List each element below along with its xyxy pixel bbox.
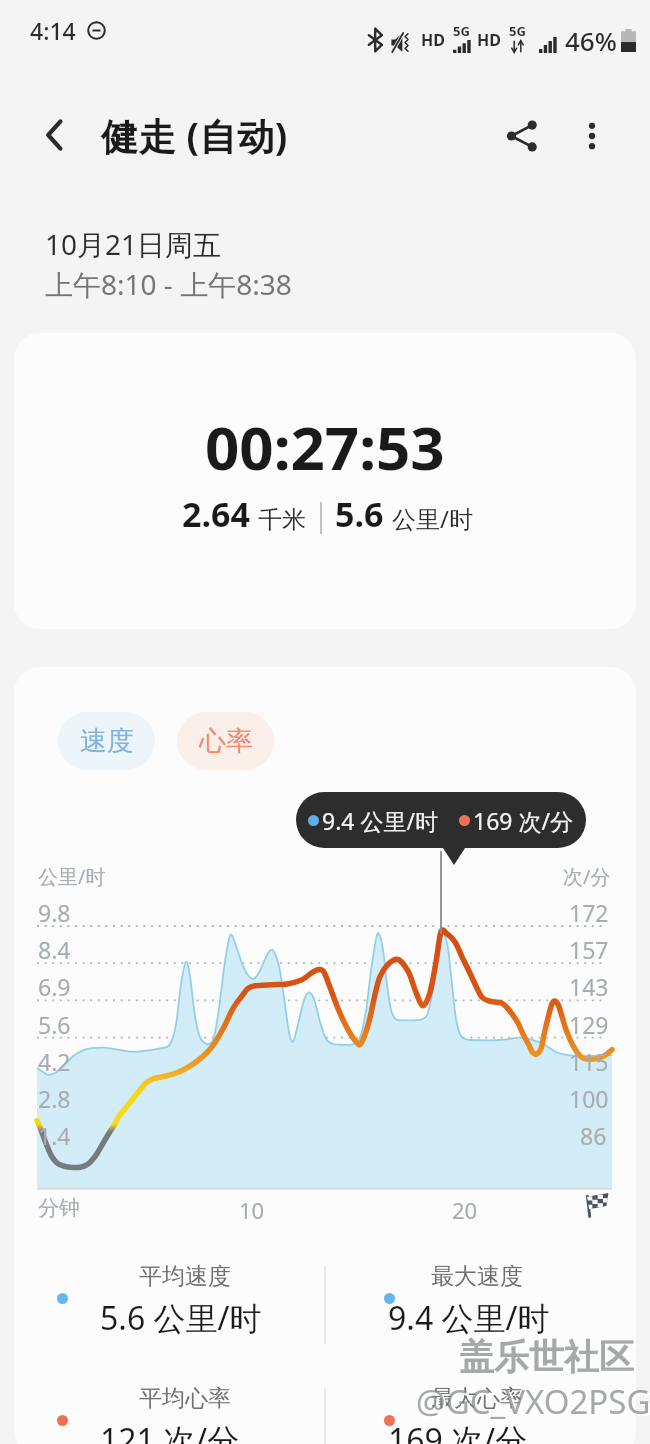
staticText: 速度 xyxy=(80,724,134,758)
staticText: 公里/时 xyxy=(392,502,473,535)
staticText: 5G xyxy=(509,22,526,40)
staticText: 5G xyxy=(453,22,470,40)
staticText: 172 xyxy=(569,897,609,928)
staticText: 盖乐世社区 xyxy=(459,1335,634,1379)
staticText: 86 xyxy=(580,1120,607,1151)
staticText: @GC_VXO2PSG xyxy=(416,1379,650,1424)
button[interactable]: 9.4 公里/时 xyxy=(296,792,586,848)
button[interactable]: Back xyxy=(26,106,84,164)
staticText: 129 xyxy=(569,1009,609,1040)
staticText: 20 xyxy=(452,1195,478,1225)
staticText: 5.6 xyxy=(38,1009,71,1040)
staticText: 上午8:10 - 上午8:38 xyxy=(45,265,292,303)
staticText: 115 xyxy=(569,1046,609,1077)
staticText: 健走 (自动) xyxy=(101,110,288,161)
staticText: 169 次/分 xyxy=(473,805,574,836)
staticText: HD xyxy=(421,29,445,51)
staticText: 100 xyxy=(569,1083,609,1114)
button[interactable]: 心率 xyxy=(177,712,274,770)
staticText: 169 次/分 xyxy=(388,1418,528,1444)
button[interactable]: 最大心率 xyxy=(326,1378,632,1444)
staticText: 平均心率 xyxy=(139,1384,231,1413)
staticText: 平均速度 xyxy=(139,1262,231,1291)
staticText: 最大速度 xyxy=(431,1262,523,1291)
staticText: 公里/时 xyxy=(38,863,106,890)
button[interactable]: Share xyxy=(492,106,552,166)
staticText: 143 xyxy=(569,971,609,1002)
staticText: 4:14 xyxy=(30,15,76,46)
button[interactable]: 最大速度 xyxy=(326,1256,632,1372)
staticText: 9.4 公里/时 xyxy=(322,805,439,836)
staticText: 9.4 公里/时 xyxy=(388,1296,550,1340)
staticText: 千米 xyxy=(258,505,306,535)
button[interactable]: 速度 xyxy=(58,712,155,770)
staticText: 8.4 xyxy=(38,934,71,965)
staticText: 10月21日周五 xyxy=(45,225,222,263)
staticText: 次/分 xyxy=(563,863,611,890)
button[interactable]: 平均心率 xyxy=(18,1378,324,1444)
staticText: HD xyxy=(477,29,501,51)
staticText: 00:27:53 xyxy=(205,406,445,488)
button[interactable]: More options xyxy=(562,106,622,166)
staticText: 121 次/分 xyxy=(100,1418,240,1444)
staticText: 157 xyxy=(569,934,609,965)
staticText: 6.9 xyxy=(38,971,71,1002)
staticText: 2.64 xyxy=(182,491,250,537)
staticText: 盖乐世社区 xyxy=(461,1337,636,1381)
staticText: 5.6 公里/时 xyxy=(100,1296,262,1340)
staticText: @GC_VXO2PSG xyxy=(418,1381,650,1426)
button[interactable]: 00:27:53 xyxy=(14,333,636,629)
button[interactable]: 平均速度 xyxy=(18,1256,324,1372)
staticText: 5.6 xyxy=(335,491,384,537)
staticText: 1.4 xyxy=(38,1120,71,1151)
staticText: 46% xyxy=(565,23,617,58)
staticText: 4.2 xyxy=(38,1046,71,1077)
staticText: 分钟 xyxy=(38,1195,80,1221)
staticText: 最大心率 xyxy=(431,1384,523,1413)
staticText: 2.8 xyxy=(38,1083,71,1114)
staticText: 心率 xyxy=(199,724,253,758)
staticText: 9.8 xyxy=(38,897,71,928)
staticText: 10 xyxy=(239,1195,265,1225)
